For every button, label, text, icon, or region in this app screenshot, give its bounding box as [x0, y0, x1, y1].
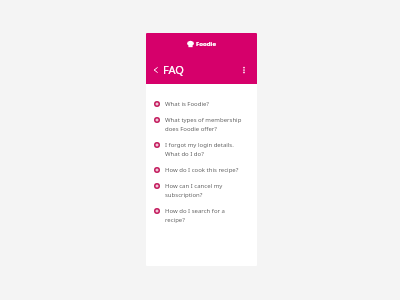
button[interactable]: How do I search for a recipe?: [146, 203, 257, 228]
staticText: How do I cook this recipe?: [165, 166, 239, 174]
other: Back: [153, 67, 159, 73]
staticText: Foodie: [196, 40, 216, 48]
staticText: What types of membership does Foodie off…: [165, 116, 242, 133]
button[interactable]: More options: [237, 63, 251, 77]
staticText: I forgot my login details. What do I do?: [165, 141, 234, 158]
button[interactable]: What types of membership does Foodie off…: [146, 112, 257, 137]
staticText: How can I cancel my subscription?: [165, 182, 223, 199]
staticText: How do I search for a recipe?: [165, 207, 225, 224]
button[interactable]: I forgot my login details. What do I do?: [146, 137, 257, 162]
button[interactable]: Back: [151, 59, 186, 80]
button[interactable]: How can I cancel my subscription?: [146, 178, 257, 203]
staticText: What is Foodie?: [165, 100, 209, 108]
button[interactable]: What is Foodie?: [146, 96, 257, 112]
button[interactable]: How do I cook this recipe?: [146, 162, 257, 178]
staticText: FAQ: [163, 62, 184, 77]
